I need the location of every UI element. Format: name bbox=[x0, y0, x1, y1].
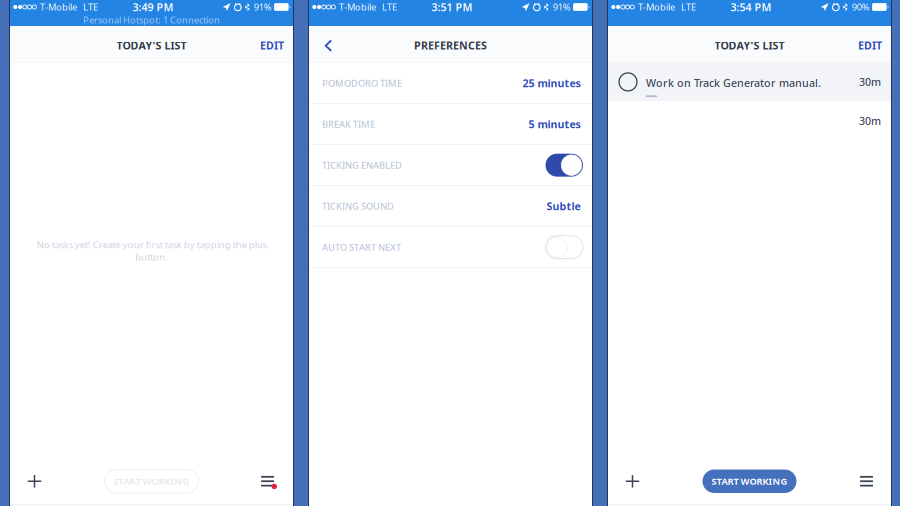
staticText: 90% bbox=[852, 1, 870, 13]
staticText: 25 minutes bbox=[522, 76, 580, 90]
staticText: 3:51 PM bbox=[431, 0, 472, 14]
button[interactable]: 30m bbox=[607, 101, 892, 140]
staticText: TICKING ENABLED bbox=[322, 159, 402, 171]
button[interactable]: EDIT bbox=[250, 25, 294, 64]
staticText: 30m bbox=[859, 75, 881, 89]
staticText: START WORKING bbox=[711, 475, 787, 487]
button[interactable]: Back bbox=[308, 24, 348, 64]
staticText: 5 minutes bbox=[528, 117, 580, 131]
staticText: TODAY'S LIST bbox=[714, 38, 784, 52]
button[interactable]: Menu bbox=[841, 458, 892, 504]
staticText: Subtle bbox=[546, 199, 580, 213]
staticText: START WORKING bbox=[113, 475, 189, 487]
staticText: 91% bbox=[553, 1, 571, 13]
button[interactable]: Menu bbox=[243, 458, 294, 504]
staticText: EDIT bbox=[260, 38, 284, 52]
staticText: LTE bbox=[83, 1, 98, 13]
button[interactable]: POMODORO TIME bbox=[308, 63, 593, 104]
staticText: 3:49 PM bbox=[132, 0, 173, 14]
staticText: POMODORO TIME bbox=[322, 77, 402, 89]
button[interactable]: Add task bbox=[607, 458, 658, 504]
button[interactable]: TICKING SOUND bbox=[308, 186, 593, 227]
button[interactable]: START WORKING bbox=[702, 469, 796, 493]
staticText: PREFERENCES bbox=[414, 38, 487, 52]
staticText: LTE bbox=[382, 1, 397, 13]
button[interactable]: TICKING ENABLED bbox=[308, 145, 593, 186]
staticText: TICKING SOUND bbox=[322, 200, 394, 212]
button[interactable]: Work on Track Generator manual. bbox=[607, 63, 892, 101]
button[interactable]: AUTO START NEXT bbox=[308, 227, 593, 268]
staticText: 3:54 PM bbox=[730, 0, 771, 14]
staticText: BREAK TIME bbox=[322, 118, 375, 130]
staticText: Work on Track Generator manual. bbox=[646, 76, 821, 90]
staticText: AUTO START NEXT bbox=[322, 241, 401, 253]
button[interactable]: START WORKING bbox=[104, 469, 198, 493]
staticText: T-Mobile bbox=[638, 1, 675, 13]
staticText: TODAY'S LIST bbox=[116, 38, 186, 52]
staticText: T-Mobile bbox=[40, 1, 77, 13]
staticText: 30m bbox=[859, 114, 881, 128]
staticText: No tasks yet! Create your first task by … bbox=[36, 238, 266, 263]
staticText: LTE bbox=[681, 1, 696, 13]
staticText: T-Mobile bbox=[339, 1, 376, 13]
button[interactable]: EDIT bbox=[848, 25, 892, 64]
button[interactable]: BREAK TIME bbox=[308, 104, 593, 145]
staticText: Personal Hotspot: 1 Connection bbox=[83, 14, 220, 26]
staticText: EDIT bbox=[858, 38, 882, 52]
staticText: 91% bbox=[254, 1, 272, 13]
button[interactable]: Add task bbox=[9, 458, 60, 504]
